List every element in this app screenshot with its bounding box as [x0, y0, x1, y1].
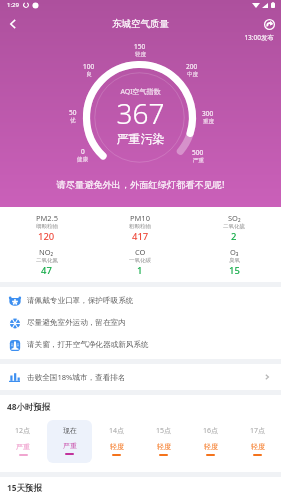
staticText: 严重 — [16, 442, 30, 451]
staticText: 200 — [186, 62, 198, 71]
staticText: PM10 — [130, 213, 150, 223]
staticText: 48小时预报 — [7, 401, 51, 412]
staticText: 请佩戴专业口罩，保护呼吸系统 — [27, 296, 134, 306]
staticText: 臭氧 — [229, 257, 240, 264]
staticText: 二氧化硫 — [223, 223, 245, 230]
staticText: 一氧化碳 — [129, 257, 151, 264]
staticText: O₃ — [230, 247, 239, 257]
staticText: 轻度 — [157, 442, 171, 451]
button[interactable]: 请佩戴专业口罩，保护呼吸系统 — [0, 290, 281, 312]
staticText: 东城空气质量 — [112, 18, 169, 30]
staticText: SO₂ — [228, 213, 241, 223]
button[interactable]: 14点 — [94, 420, 139, 463]
staticText: 健康 — [77, 156, 88, 163]
staticText: 击败全国18%城市，查看排名 — [27, 372, 126, 382]
button[interactable]: 返回 — [0, 11, 26, 37]
button[interactable]: 尽量避免室外运动，留在室内 — [0, 312, 281, 334]
staticText: 14点 — [109, 426, 125, 436]
staticText: AQI空气指数 — [0, 87, 281, 97]
staticText: 417 — [132, 230, 149, 243]
staticText: 请关窗，打开空气净化器或新风系统 — [27, 340, 149, 350]
button[interactable]: CO — [93, 247, 187, 277]
staticText: 120 — [38, 230, 55, 243]
button[interactable]: 请关窗，打开空气净化器或新风系统 — [0, 334, 281, 356]
staticText: 17点 — [250, 426, 266, 436]
staticText: 严重污染 — [0, 131, 281, 146]
staticText: 367 — [0, 94, 281, 132]
staticText: 100 — [83, 62, 95, 71]
staticText: 1 — [137, 264, 143, 277]
button[interactable]: 击败全国18%城市，查看排名 — [0, 364, 281, 390]
staticText: 16点 — [203, 426, 219, 436]
staticText: 中度 — [187, 71, 198, 78]
button[interactable]: PM2.5 — [0, 213, 93, 243]
staticText: 13:00发布 — [0, 33, 274, 42]
button[interactable]: 现在 — [47, 420, 92, 463]
staticText: NO₂ — [39, 247, 54, 257]
staticText: 15天预报 — [7, 482, 42, 493]
staticText: 15点 — [156, 426, 172, 436]
button[interactable]: 16点 — [188, 420, 233, 463]
button[interactable]: 15点 — [141, 420, 186, 463]
button[interactable]: O₃ — [187, 247, 281, 277]
staticText: 50 — [69, 108, 77, 117]
button[interactable]: 分享 — [257, 12, 281, 36]
button[interactable]: SO₂ — [187, 213, 281, 243]
staticText: 细颗粒物 — [36, 223, 58, 230]
staticText: 优 — [70, 117, 76, 124]
staticText: 良 — [86, 71, 92, 78]
staticText: 严重 — [63, 441, 77, 450]
staticText: PM2.5 — [36, 213, 58, 223]
staticText: 47 — [41, 264, 52, 277]
staticText: 12点 — [15, 426, 31, 436]
staticText: 尽量避免室外运动，留在室内 — [27, 318, 126, 328]
staticText: 请尽量避免外出，外面红绿灯都看不见呢! — [0, 178, 281, 191]
button[interactable]: 17点 — [235, 420, 280, 463]
button[interactable]: NO₂ — [0, 247, 93, 277]
staticText: 重度 — [203, 118, 214, 125]
staticText: 现在 — [63, 426, 77, 435]
button[interactable]: PM10 — [93, 213, 187, 243]
staticText: 0 — [81, 147, 85, 156]
staticText: CO — [135, 247, 146, 257]
staticText: 15 — [229, 264, 240, 277]
staticText: 粗颗粒物 — [129, 223, 151, 230]
staticText: 轻度 — [135, 51, 146, 58]
staticText: 500 — [192, 148, 204, 157]
staticText: 轻度 — [251, 442, 265, 451]
staticText: 轻度 — [204, 442, 218, 451]
staticText: 2 — [231, 230, 237, 243]
staticText: 300 — [202, 109, 214, 118]
staticText: 1:29 — [7, 1, 19, 9]
staticText: 150 — [134, 42, 146, 51]
staticText: 二氧化氮 — [36, 257, 58, 264]
staticText: 严重 — [193, 157, 204, 164]
staticText: 轻度 — [110, 442, 124, 451]
button[interactable]: 12点 — [1, 420, 45, 463]
